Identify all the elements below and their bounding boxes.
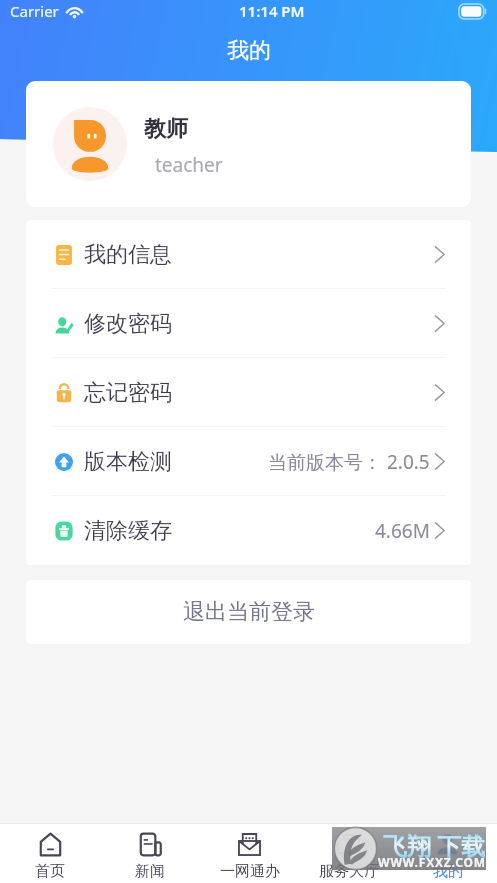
staticText: 飞翔 下载 [383, 829, 486, 862]
staticText: 清除缓存 [84, 517, 172, 545]
staticText: 一网通办 [220, 862, 280, 881]
staticText: 我的信息 [84, 241, 172, 269]
button[interactable]: 退出当前登录 [26, 580, 471, 644]
staticText: Carrier [10, 1, 59, 21]
button[interactable]: 首页 [0, 824, 100, 883]
staticText: 11:14 PM [239, 1, 305, 21]
button[interactable]: 服务大厅 [299, 824, 398, 883]
staticText: 退出当前登录 [183, 598, 315, 626]
button[interactable]: 我的 [398, 824, 497, 883]
button[interactable]: 清除缓存 [26, 496, 471, 565]
button[interactable]: 新闻 [100, 824, 200, 883]
staticText: 教师 [144, 115, 188, 143]
staticText: WWW.FXXZ.COM [378, 854, 486, 870]
staticText: 首页 [35, 862, 65, 881]
button[interactable]: 教师 [26, 81, 471, 207]
staticText: 新闻 [135, 862, 165, 881]
button[interactable]: 我的信息 [26, 220, 471, 289]
button[interactable]: 修改密码 [26, 289, 471, 358]
staticText: 版本检测 [84, 448, 172, 476]
staticText: 修改密码 [84, 310, 172, 338]
staticText: 忘记密码 [84, 379, 172, 407]
staticText: 4.66M [375, 518, 430, 544]
staticText: 我的 [433, 862, 463, 881]
staticText: 当前版本号： 2.0.5 [268, 449, 430, 475]
button[interactable]: 版本检测 [26, 427, 471, 496]
staticText: 我的 [227, 37, 271, 65]
button[interactable]: 忘记密码 [26, 358, 471, 427]
staticText: 服务大厅 [319, 862, 379, 881]
button[interactable]: 一网通办 [200, 824, 299, 883]
staticText: teacher [155, 152, 223, 178]
